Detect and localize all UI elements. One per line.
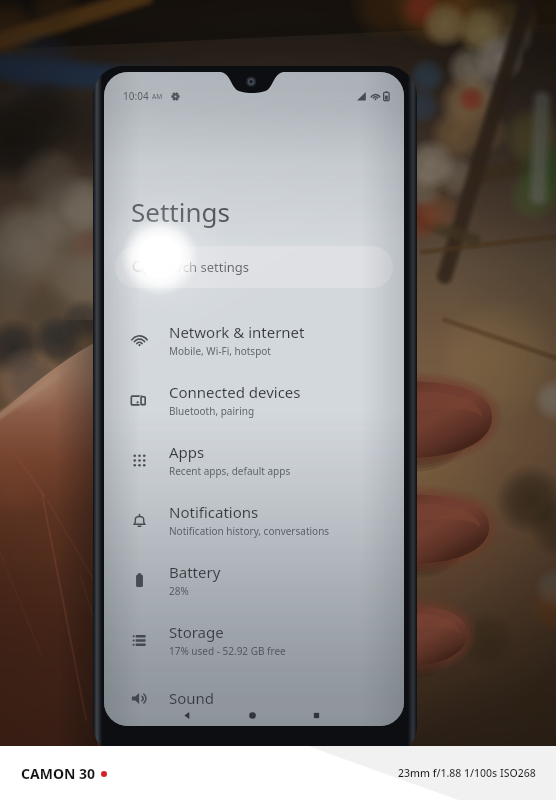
staticText: Storage bbox=[169, 622, 224, 642]
button[interactable]: Network & internet bbox=[104, 310, 404, 370]
staticText: Network & internet bbox=[169, 322, 305, 342]
staticText: 17% used - 52.92 GB free bbox=[169, 644, 286, 658]
button[interactable]: Apps bbox=[104, 430, 404, 490]
button[interactable]: Back bbox=[155, 704, 220, 726]
staticText: Settings bbox=[131, 194, 230, 229]
staticText: 28% bbox=[169, 584, 189, 598]
button[interactable]: Battery bbox=[104, 550, 404, 610]
staticText: Battery bbox=[169, 562, 221, 582]
staticText: AM bbox=[152, 92, 163, 101]
staticText: Recent apps, default apps bbox=[169, 464, 291, 478]
staticText: Notification history, conversations bbox=[169, 524, 330, 538]
button[interactable]: Sound bbox=[104, 670, 404, 726]
button[interactable]: Connected devices bbox=[104, 370, 404, 430]
staticText: 23mm f/1.88 1/100s ISO268 bbox=[398, 766, 536, 780]
staticText: Notifications bbox=[169, 502, 259, 522]
button[interactable]: Search settings bbox=[115, 246, 393, 288]
button[interactable]: Notifications bbox=[104, 490, 404, 550]
staticText: Connected devices bbox=[169, 382, 301, 402]
button[interactable]: Home bbox=[220, 704, 284, 726]
button[interactable]: Storage bbox=[104, 610, 404, 670]
staticText: CAMON 30 bbox=[21, 764, 95, 783]
staticText: 10:04 bbox=[123, 89, 149, 103]
staticText: Bluetooth, pairing bbox=[169, 404, 255, 418]
button[interactable]: Recents bbox=[284, 704, 348, 726]
staticText: Mobile, Wi-Fi, hotspot bbox=[169, 344, 271, 358]
staticText: Sound bbox=[169, 688, 215, 708]
staticText: Apps bbox=[169, 442, 205, 462]
staticText: Search settings bbox=[156, 258, 250, 276]
